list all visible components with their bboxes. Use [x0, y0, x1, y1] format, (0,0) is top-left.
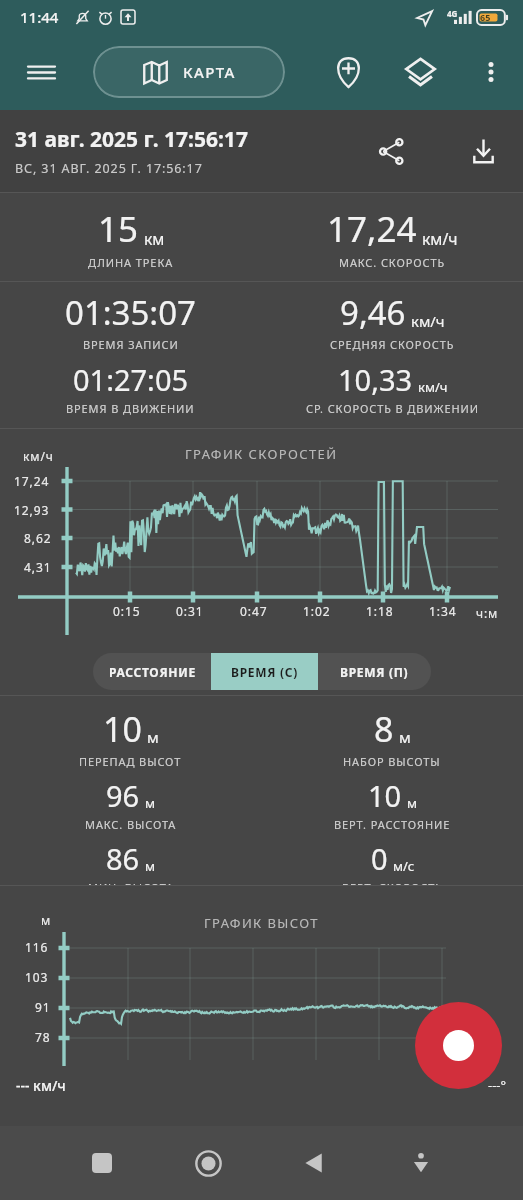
staticText: км/ч: [422, 228, 458, 249]
staticText: ВРЕМЯ (П): [340, 664, 409, 680]
staticText: ВС, 31 АВГ. 2025 Г. 17:56:17: [15, 160, 203, 177]
staticText: 8: [374, 706, 394, 752]
staticText: МИН. ВЫСОТА: [88, 880, 174, 885]
staticText: ---°: [488, 1076, 507, 1094]
staticText: 11:44: [20, 7, 59, 27]
button[interactable]: Recents: [75, 1136, 129, 1190]
staticText: 65: [480, 11, 491, 23]
staticText: 96: [106, 776, 140, 815]
button[interactable]: Share: [367, 127, 415, 175]
button[interactable]: Menu: [16, 47, 66, 97]
button[interactable]: More options: [467, 48, 515, 96]
staticText: 1:18: [366, 603, 394, 619]
staticText: ВРЕМЯ В ДВИЖЕНИИ: [66, 401, 195, 416]
button[interactable]: Download: [459, 127, 507, 175]
button[interactable]: Hide keyboard: [394, 1136, 448, 1190]
staticText: 0:47: [240, 603, 268, 619]
staticText: км/ч: [23, 448, 54, 464]
staticText: м: [145, 794, 156, 812]
staticText: ПЕРЕПАД ВЫСОТ: [79, 754, 182, 769]
staticText: МАКС. СКОРОСТЬ: [339, 255, 446, 270]
staticText: м: [41, 912, 52, 928]
button[interactable]: КАРТА: [93, 46, 285, 98]
staticText: 10,33: [338, 360, 413, 399]
staticText: 15: [98, 205, 139, 253]
button[interactable]: РАССТОЯНИЕ: [93, 653, 211, 690]
staticText: 1:02: [303, 603, 331, 619]
button[interactable]: Home: [181, 1136, 235, 1190]
staticText: м: [399, 727, 411, 748]
staticText: 1:34: [429, 603, 457, 619]
staticText: м: [147, 727, 159, 748]
staticText: 4,31: [24, 559, 52, 575]
button[interactable]: Layers: [394, 46, 446, 98]
staticText: ВРЕМЯ ЗАПИСИ: [83, 337, 179, 352]
button[interactable]: Record: [415, 1002, 502, 1089]
button[interactable]: Back: [288, 1136, 342, 1190]
staticText: км: [144, 228, 165, 249]
staticText: 10: [103, 706, 142, 752]
staticText: 17,24: [14, 473, 50, 489]
staticText: м: [145, 857, 156, 875]
staticText: НАБОР ВЫСОТЫ: [343, 754, 441, 769]
staticText: --- км/ч: [16, 1076, 66, 1095]
button[interactable]: ВРЕМЯ (П): [318, 653, 431, 690]
button[interactable]: Add marker: [322, 46, 374, 98]
staticText: 0: [371, 839, 388, 878]
staticText: ДЛИНА ТРЕКА: [88, 255, 174, 270]
staticText: ВРЕМЯ (С): [231, 664, 298, 680]
staticText: ч:м: [476, 605, 499, 621]
staticText: ГРАФИК ВЫСОТ: [204, 914, 319, 932]
staticText: 10: [368, 776, 402, 815]
staticText: км/ч: [418, 378, 448, 396]
staticText: 9,46: [340, 290, 406, 335]
staticText: 91: [35, 999, 51, 1015]
staticText: РАССТОЯНИЕ: [109, 664, 196, 680]
staticText: ГРАФИК СКОРОСТЕЙ: [185, 445, 338, 463]
staticText: КАРТА: [183, 62, 236, 82]
staticText: 4G: [447, 8, 458, 19]
staticText: 0:15: [113, 603, 141, 619]
staticText: м: [407, 794, 418, 812]
staticText: м/с: [393, 857, 415, 875]
staticText: 78: [35, 1029, 51, 1045]
button[interactable]: ВРЕМЯ (С): [211, 653, 318, 690]
staticText: СРЕДНЯЯ СКОРОСТЬ: [330, 337, 455, 352]
staticText: СР. СКОРОСТЬ В ДВИЖЕНИИ: [306, 401, 479, 416]
staticText: 0:31: [176, 603, 204, 619]
staticText: 103: [25, 969, 49, 985]
staticText: МАКС. ВЫСОТА: [85, 817, 177, 832]
staticText: 86: [106, 839, 140, 878]
staticText: км/ч: [411, 311, 445, 331]
staticText: 116: [25, 939, 49, 955]
staticText: 01:35:07: [65, 290, 196, 335]
staticText: 31 авг. 2025 г. 17:56:17: [15, 125, 248, 154]
staticText: 01:27:05: [73, 360, 189, 399]
staticText: ВЕРТ. РАССТОЯНИЕ: [334, 817, 451, 832]
staticText: 12,93: [14, 502, 50, 518]
staticText: 8,62: [24, 530, 52, 546]
staticText: 17,24: [327, 205, 417, 253]
staticText: ВЕРТ. СКОРОСТЬ: [342, 880, 443, 885]
